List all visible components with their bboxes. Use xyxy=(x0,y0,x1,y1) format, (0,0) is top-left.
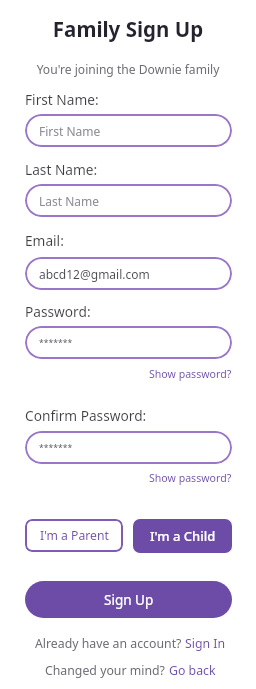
staticText: Confirm Password: xyxy=(25,406,147,425)
staticText: Last Name: xyxy=(25,160,98,179)
button[interactable]: ******* xyxy=(25,326,232,359)
staticText: Email: xyxy=(25,231,64,250)
button[interactable]: Go back xyxy=(169,662,216,679)
staticText: Family Sign Up xyxy=(0,15,256,689)
staticText: ******* xyxy=(39,442,73,454)
button[interactable]: First Name xyxy=(25,114,232,147)
button[interactable]: ******* xyxy=(25,431,232,464)
staticText: Changed your mind? xyxy=(45,662,169,679)
button[interactable]: Show password? xyxy=(149,471,232,485)
button[interactable]: I'm a Parent xyxy=(25,519,123,552)
staticText: Already have an account? xyxy=(35,635,185,652)
staticText: Last Name xyxy=(39,193,100,209)
staticText: I'm a Child xyxy=(150,527,216,545)
button[interactable]: Show password? xyxy=(149,367,232,381)
staticText: ******* xyxy=(39,337,73,349)
button[interactable]: abcd12@gmail.com xyxy=(25,257,232,290)
staticText: First Name: xyxy=(25,90,99,109)
staticText: Password: xyxy=(25,302,91,321)
staticText: First Name xyxy=(39,123,101,139)
staticText: Sign Up xyxy=(104,591,154,609)
button[interactable]: Sign Up xyxy=(25,581,232,618)
staticText: abcd12@gmail.com xyxy=(39,266,150,282)
button[interactable]: Sign In xyxy=(185,635,226,652)
button[interactable]: Last Name xyxy=(25,184,232,217)
button[interactable]: I'm a Child xyxy=(133,519,232,553)
staticText: You're joining the Downie family xyxy=(0,61,256,689)
staticText: I'm a Parent xyxy=(40,527,109,544)
